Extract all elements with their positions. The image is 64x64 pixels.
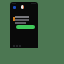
- button[interactable]: Avatar: [21, 5, 24, 9]
- button[interactable]: App icon: [13, 6, 16, 9]
- button[interactable]: Primary action: [16, 25, 35, 29]
